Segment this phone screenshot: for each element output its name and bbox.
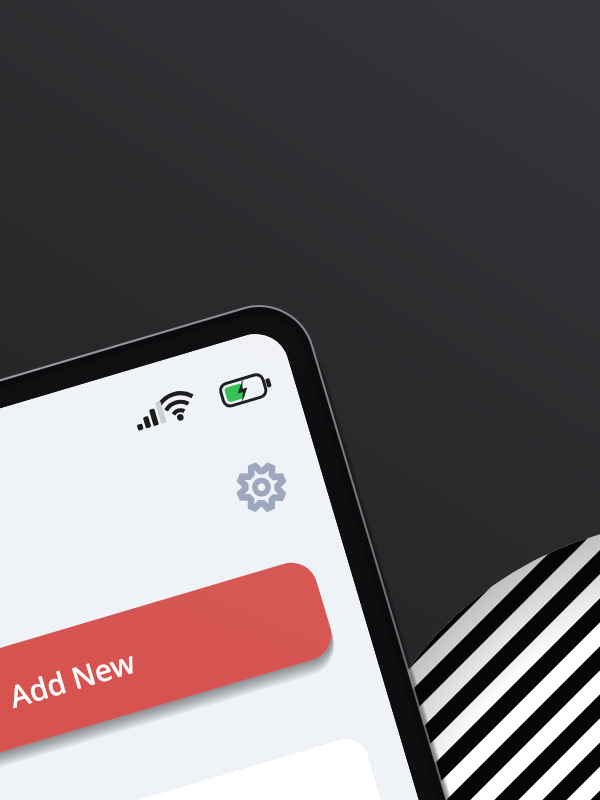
button[interactable]: Phone on desk showing app screen — [0, 0, 600, 800]
